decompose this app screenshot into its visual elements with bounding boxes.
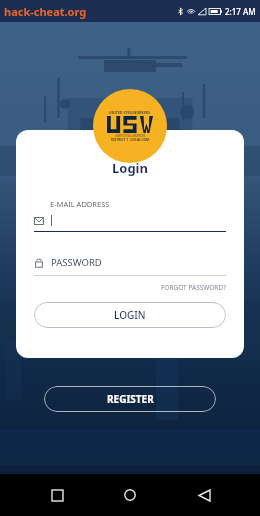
staticText: LOGIN [114,308,146,322]
button[interactable]: Recent apps [40,478,74,512]
staticText: hack-cheat.org [4,4,87,19]
staticText: FORGOT PASSWORD? [161,283,226,292]
button[interactable]: Home [113,478,147,512]
button[interactable]: PASSWORD [34,256,226,269]
staticText: UNITED STEELWORKERS [109,111,151,115]
staticText: REGISTER [107,392,154,406]
staticText: DISTRICT 1 · LOCAL.COM [111,138,150,142]
staticText: PASSWORD [51,256,102,269]
button[interactable]: LOGIN [34,302,226,328]
staticText: Login [112,159,148,177]
button[interactable]: REGISTER [44,386,216,412]
button[interactable]: FORGOT PASSWORD? [161,283,226,292]
staticText: 2:17 AM [225,6,256,17]
staticText: E-MAIL ADDRESS [50,199,110,209]
button[interactable] [34,215,226,226]
button[interactable]: Back [187,478,221,512]
staticText: UNITED STEEL WORKERS [115,134,146,138]
